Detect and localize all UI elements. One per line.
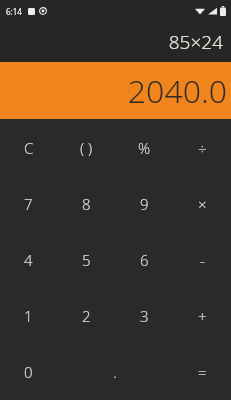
staticText: ÷ (198, 138, 207, 158)
staticText: 4 (24, 250, 33, 270)
staticText: C (24, 138, 34, 158)
button[interactable]: ÷ (173, 119, 231, 176)
staticText: 2 (82, 306, 91, 326)
button[interactable]: 4 (0, 232, 57, 288)
staticText: + (198, 306, 207, 326)
button[interactable]: 5 (57, 232, 115, 288)
staticText: ( ) (80, 138, 93, 158)
staticText: 0 (24, 362, 33, 382)
button[interactable]: 1 (0, 288, 57, 344)
button[interactable]: ( ) (57, 119, 115, 176)
staticText: = (198, 362, 207, 382)
button[interactable]: 6 (115, 232, 173, 288)
staticText: 5 (82, 250, 91, 270)
staticText: 7 (24, 194, 33, 214)
staticText: 9 (140, 194, 149, 214)
button[interactable]: % (115, 119, 173, 176)
staticText: 1 (24, 306, 33, 326)
staticText: 85×24 (168, 29, 223, 55)
button[interactable]: 3 (115, 288, 173, 344)
staticText: % (138, 138, 151, 158)
staticText: 2040.0 (127, 69, 227, 113)
staticText: - (200, 250, 205, 270)
button[interactable]: = (173, 344, 231, 400)
button[interactable]: + (173, 288, 231, 344)
staticText: 6 (140, 250, 149, 270)
button[interactable]: 7 (0, 176, 57, 232)
button[interactable]: 0 (0, 344, 57, 400)
button[interactable]: 2 (57, 288, 115, 344)
staticText: 6:14 (6, 6, 22, 17)
staticText: 8 (82, 194, 91, 214)
button[interactable]: 9 (115, 176, 173, 232)
staticText: . (113, 362, 117, 382)
button[interactable]: 8 (57, 176, 115, 232)
staticText: 3 (140, 306, 149, 326)
button[interactable]: × (173, 176, 231, 232)
staticText: × (198, 194, 207, 214)
button[interactable]: C (0, 119, 57, 176)
button[interactable]: - (173, 232, 231, 288)
